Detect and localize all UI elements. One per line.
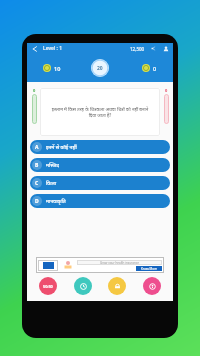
staticText: 10: [54, 65, 61, 72]
button[interactable]: Ask audience: [143, 277, 161, 295]
staticText: इस्लाम में किस तरह के चित्रकला अथवा चित्…: [50, 106, 150, 118]
staticText: 50:50: [43, 284, 53, 289]
button[interactable]: Profile: [161, 44, 170, 53]
staticText: मस्जिद: [46, 162, 59, 169]
button[interactable]: Advertisement: [36, 257, 164, 273]
button[interactable]: Sound: [149, 44, 158, 53]
staticText: Grow your health insurance: [100, 261, 139, 265]
staticText: 12,500: [130, 46, 145, 52]
button[interactable]: D: [30, 194, 170, 208]
staticText: A: [35, 144, 39, 151]
staticText: मानवाकृति: [46, 198, 66, 205]
staticText: 0: [33, 88, 36, 93]
button[interactable]: Skip question: [108, 277, 126, 295]
button[interactable]: Fifty fifty: [39, 277, 57, 295]
staticText: इनमें से कोई नहीं: [46, 144, 77, 151]
staticText: C: [35, 180, 39, 187]
staticText: Level : 1: [43, 45, 63, 52]
staticText: 0: [153, 65, 157, 72]
button[interactable]: C: [30, 176, 170, 190]
button[interactable]: B: [30, 158, 170, 172]
staticText: Know More: [141, 267, 158, 271]
button[interactable]: A: [30, 140, 170, 154]
button[interactable]: Back: [30, 44, 40, 54]
staticText: B: [35, 162, 39, 169]
staticText: 0: [165, 88, 168, 93]
button[interactable]: Add time: [74, 277, 92, 295]
button[interactable]: Timer: [91, 59, 109, 77]
staticText: D: [35, 198, 39, 205]
staticText: 20: [97, 65, 103, 72]
staticText: किला: [46, 180, 57, 187]
